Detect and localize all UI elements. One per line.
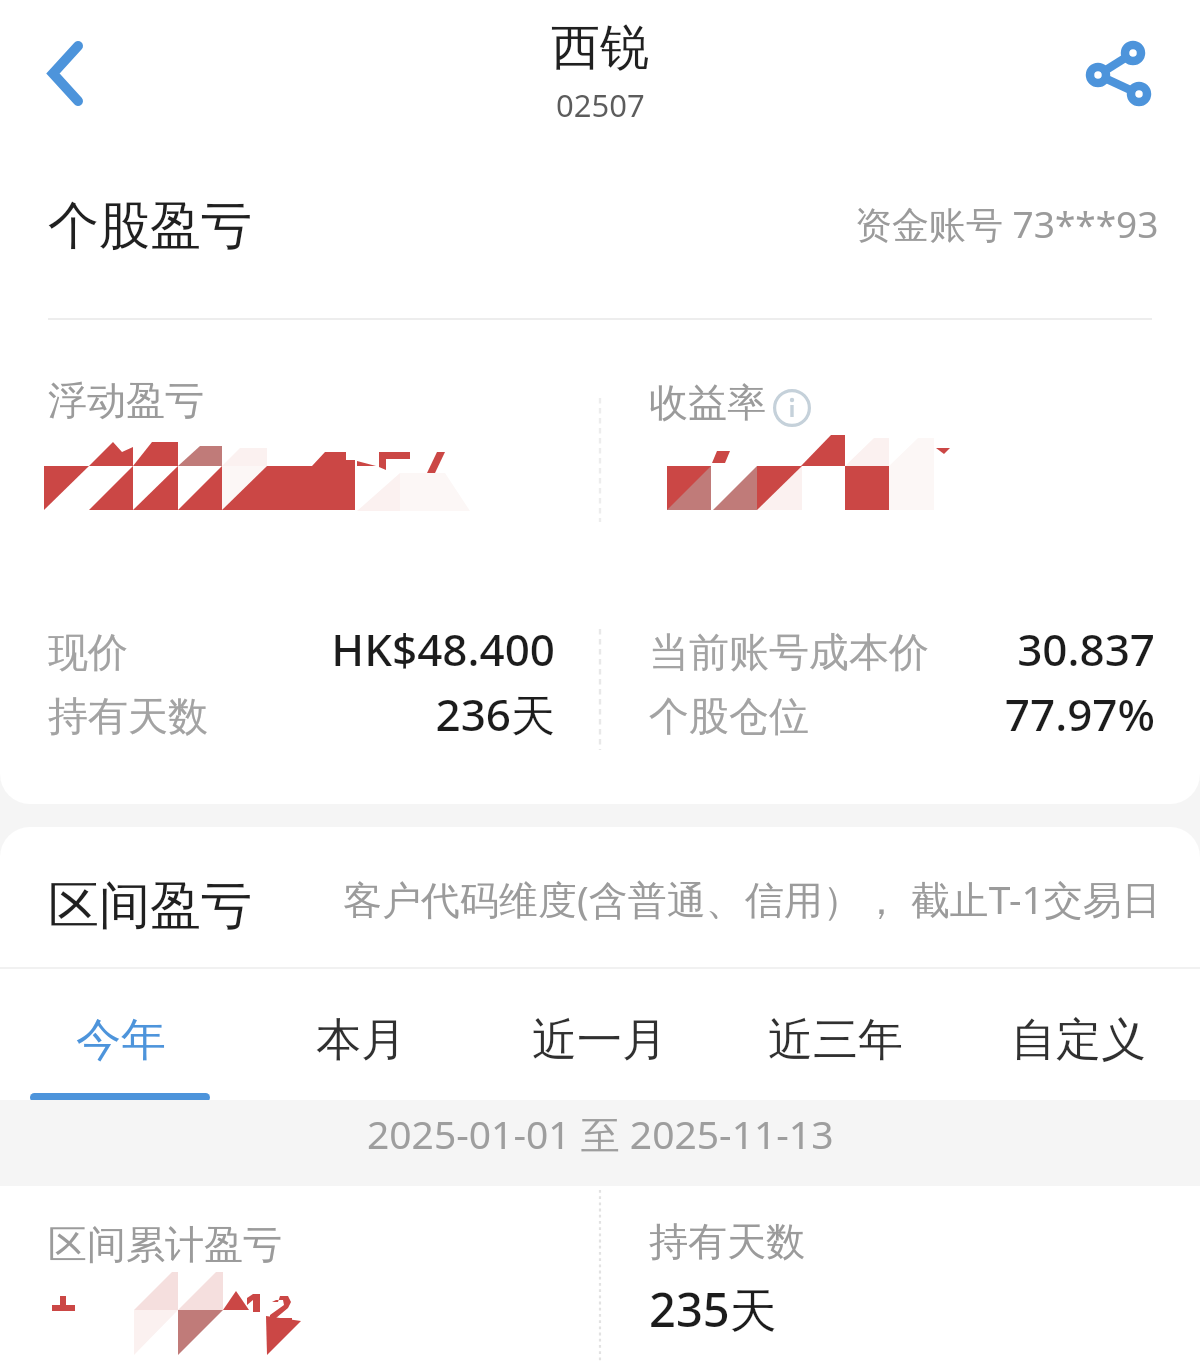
staticText: 现价 [48,627,128,677]
staticText: 当前账号成本价 [649,627,929,677]
staticText: 77.97% [900,684,1155,744]
staticText: 02507 [556,84,645,126]
staticText: 个股仓位 [649,691,809,741]
staticText: 区间盈亏 [48,874,252,938]
staticText: 235天 [649,1277,777,1341]
staticText: 区间累计盈亏 [48,1220,282,1269]
staticText: 个股盈亏 [48,194,252,258]
staticText: 236天 [120,684,555,744]
button[interactable]: 本月 [240,969,480,1101]
button[interactable]: Share [1070,24,1160,114]
staticText: 本月 [316,1012,406,1069]
staticText: 资金账号 73***93 [855,198,1159,249]
button[interactable]: 今年 [0,969,240,1101]
staticText: 今年 [76,1012,166,1069]
button[interactable]: 近一月 [460,969,700,1101]
button[interactable]: Back [20,17,110,107]
staticText: 自定义 [1011,1012,1146,1069]
staticText: HK$48.400 [120,619,555,679]
staticText: 西锐 [551,17,649,79]
staticText: 30.837 [900,619,1155,679]
staticText: 浮动盈亏 [48,376,204,425]
button[interactable]: 近三年 [700,969,940,1101]
staticText: 持有天数 [649,1217,805,1266]
staticText: 2025-01-01 至 2025-11-13 [367,1107,834,1160]
staticText: 收益率 [649,378,766,427]
staticText: 客户代码维度(含普通、信用）， 截止T-1交易日 [343,872,1161,925]
button[interactable]: 自定义 [940,969,1200,1101]
staticText: 持有天数 [48,691,208,741]
staticText: 近一月 [532,1012,667,1069]
staticText: 近三年 [768,1012,903,1069]
